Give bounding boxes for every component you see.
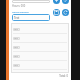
button[interactable]: Add entry xyxy=(53,0,60,4)
button[interactable]: Text xyxy=(12,14,50,21)
button[interactable]: Refresh xyxy=(62,9,69,16)
button[interactable]: Text xyxy=(11,52,69,61)
staticText: Text xyxy=(14,64,19,67)
staticText: Hours: 000 xyxy=(12,4,26,8)
button[interactable]: Confirm entry xyxy=(62,0,69,4)
staticText: Text xyxy=(14,16,20,20)
button[interactable]: Text xyxy=(11,61,69,70)
staticText: Hours Worked xyxy=(12,10,29,13)
button[interactable]: Text xyxy=(11,43,69,52)
staticText: Text xyxy=(14,37,19,40)
button[interactable]: Text xyxy=(11,34,69,43)
staticText: Text xyxy=(14,55,19,58)
button[interactable]: Save xyxy=(53,9,60,16)
staticText: Total: 0 xyxy=(59,74,68,78)
button[interactable]: Text xyxy=(11,25,69,34)
staticText: Text xyxy=(14,46,19,49)
staticText: Text xyxy=(14,28,19,31)
